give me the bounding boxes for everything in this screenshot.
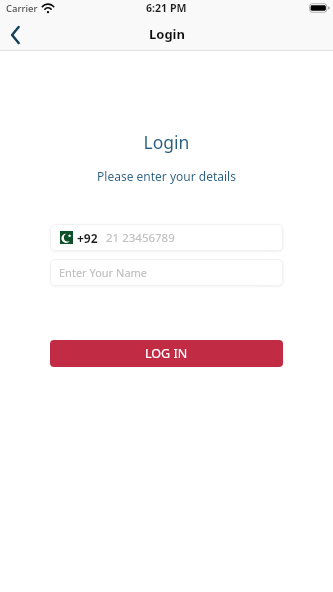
staticText: +92 — [77, 230, 98, 246]
button[interactable]: Enter Your Name — [50, 259, 283, 286]
staticText: Please enter your details — [0, 168, 333, 184]
staticText: 6:21 PM — [146, 1, 187, 15]
button[interactable]: Back — [1, 21, 29, 49]
staticText: Enter Your Name — [59, 265, 148, 280]
staticText: Login — [0, 130, 333, 154]
staticText: Carrier — [6, 2, 38, 15]
staticText: Login — [149, 25, 185, 43]
button[interactable]: LOG IN — [50, 340, 283, 367]
staticText: LOG IN — [145, 345, 188, 362]
staticText: 21 23456789 — [106, 230, 175, 246]
button[interactable]: +92 — [50, 224, 283, 251]
